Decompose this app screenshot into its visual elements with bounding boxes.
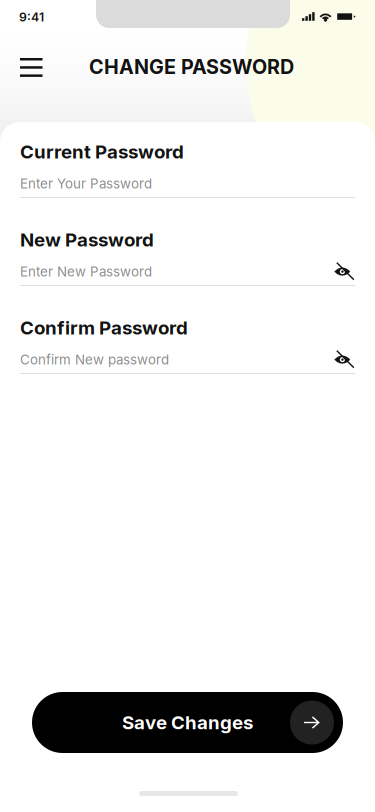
staticText: Enter New Password	[20, 263, 152, 280]
staticText: Confirm Password	[20, 316, 188, 339]
staticText: New Password	[20, 228, 154, 251]
staticText: Current Password	[20, 140, 184, 163]
staticText: CHANGE PASSWORD	[89, 55, 294, 79]
button[interactable]: Save Changes	[32, 692, 343, 753]
button[interactable]: Show password	[331, 345, 358, 373]
button[interactable]: Menu	[11, 49, 51, 86]
button[interactable]: Show password	[331, 257, 358, 285]
staticText: Confirm New password	[20, 351, 169, 368]
staticText: Save Changes	[122, 711, 253, 734]
staticText: Enter Your Password	[20, 175, 152, 192]
staticText: 9:41	[19, 9, 44, 24]
